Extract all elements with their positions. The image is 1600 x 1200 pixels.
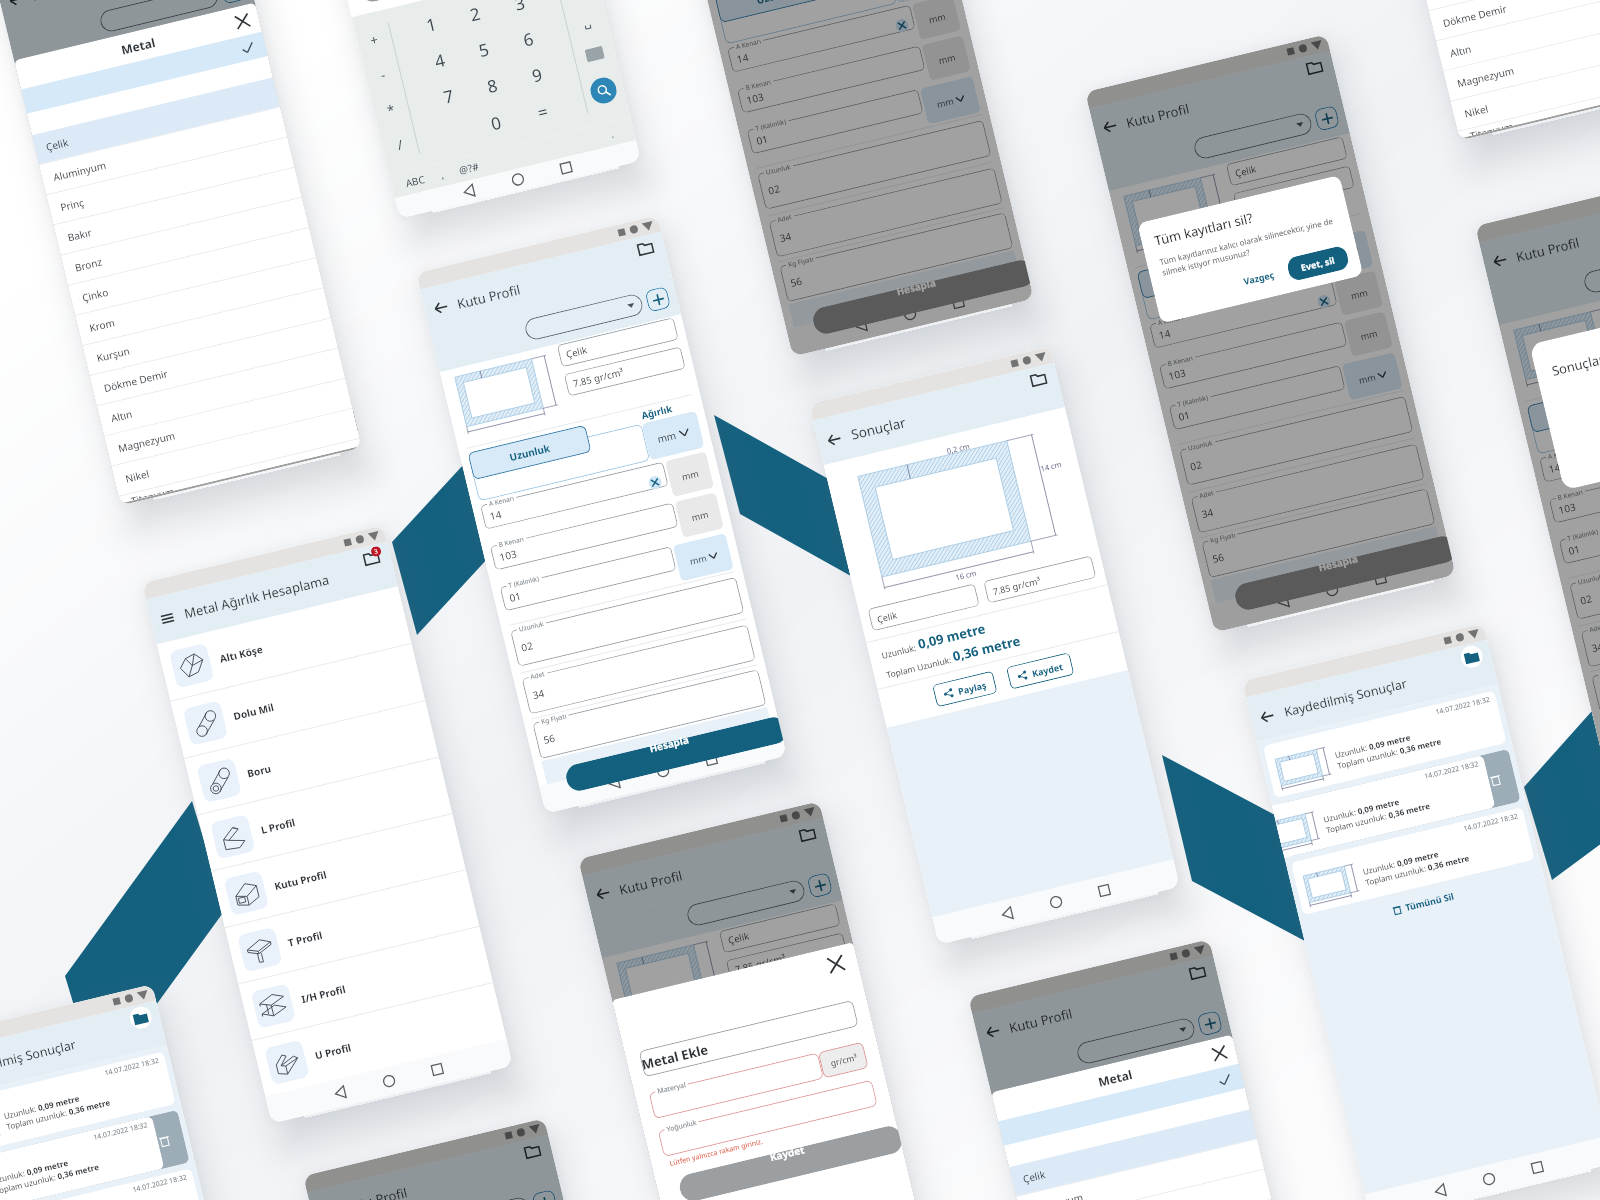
button[interactable]: mm <box>1193 1134 1257 1184</box>
button[interactable]: Delete record <box>1277 749 1521 857</box>
button[interactable]: Search <box>588 75 619 106</box>
button[interactable]: Kutu Profil <box>211 814 466 927</box>
button[interactable]: Prinç <box>1023 1170 1271 1200</box>
button[interactable] <box>717 0 897 44</box>
button[interactable]: Ağırlık <box>1309 221 1343 241</box>
button[interactable]: Kaydedilmiş Sonuçlar <box>0 1001 167 1103</box>
button[interactable]: Çelik <box>1009 1109 1257 1196</box>
button[interactable]: U Profil <box>252 983 506 1096</box>
button[interactable]: Tümünü Sil <box>1305 865 1541 940</box>
button[interactable]: Saved records <box>1458 643 1485 670</box>
button[interactable]: Uzunluk <box>42 117 167 172</box>
button[interactable]: mm <box>888 0 952 3</box>
button[interactable]: Add metal <box>220 0 246 4</box>
button[interactable]: Kutu Profil <box>1098 53 1332 150</box>
button[interactable]: Altın <box>1436 0 1600 71</box>
button[interactable] <box>523 292 645 342</box>
button[interactable]: Paylaş <box>932 671 998 707</box>
button[interactable]: Saved records <box>362 550 381 566</box>
button[interactable]: Nikel <box>1450 44 1600 131</box>
button[interactable]: Bakır <box>54 168 302 255</box>
button[interactable]: Delete record <box>0 1110 190 1200</box>
button[interactable]: mm <box>216 102 280 152</box>
button[interactable]: 14.07.2022 18:32 <box>0 1168 204 1200</box>
button[interactable]: Evet, sil <box>1285 245 1350 282</box>
button[interactable]: Uzunluk <box>629 1011 754 1066</box>
button[interactable]: mm <box>827 1037 876 1083</box>
button[interactable]: mm <box>240 143 289 189</box>
button[interactable]: Uzunluk <box>1136 244 1261 299</box>
button[interactable] <box>470 423 650 501</box>
button[interactable]: Add metal <box>645 286 671 312</box>
button[interactable] <box>45 115 225 193</box>
button[interactable]: Kutu Profil <box>4 0 238 23</box>
button[interactable]: Kutu Profil <box>591 820 825 917</box>
button[interactable]: Boru <box>184 701 439 814</box>
button[interactable]: mm <box>837 1078 886 1124</box>
button[interactable]: mm <box>912 0 961 40</box>
button[interactable]: mm <box>803 996 867 1046</box>
button[interactable] <box>1529 376 1600 454</box>
button[interactable]: Nikel <box>111 409 360 496</box>
button[interactable]: Saved records <box>1029 371 1048 387</box>
button[interactable] <box>1582 245 1600 295</box>
button[interactable] <box>1075 1016 1197 1066</box>
button[interactable]: Bronz <box>61 198 309 285</box>
button[interactable] <box>138 408 359 485</box>
button[interactable]: Saved records <box>523 1143 542 1159</box>
button[interactable]: 14.07.2022 18:32 <box>0 1116 164 1200</box>
button[interactable]: mm <box>673 533 734 582</box>
button[interactable]: Close <box>827 955 845 973</box>
button[interactable]: Ağırlık <box>802 988 836 1008</box>
button[interactable]: mm <box>835 1119 896 1168</box>
button[interactable]: Titanyum <box>119 439 361 504</box>
button[interactable]: Titanyum <box>1458 74 1600 139</box>
button[interactable]: mm <box>1342 352 1403 401</box>
button[interactable]: Kutu Profil <box>981 958 1215 1055</box>
button[interactable]: Saved records <box>1305 59 1324 75</box>
button[interactable]: Kaydet <box>1006 652 1074 690</box>
button[interactable]: Sonuçlar <box>813 363 1065 465</box>
button[interactable] <box>685 878 807 928</box>
button[interactable]: Kaydedilmiş Sonuçlar <box>1246 640 1498 742</box>
button[interactable] <box>1022 1147 1202 1200</box>
button[interactable]: mm <box>675 492 724 538</box>
button[interactable]: Kutu Profil <box>429 234 663 331</box>
button[interactable]: Add metal <box>1314 105 1340 131</box>
button[interactable] <box>677 1124 903 1200</box>
button[interactable]: Close <box>235 13 250 29</box>
button[interactable]: Ağırlık <box>640 402 674 422</box>
button[interactable]: Uzunluk <box>1526 378 1600 433</box>
button[interactable]: Clear <box>1316 294 1332 309</box>
button[interactable]: 14.07.2022 18:32 <box>1272 755 1495 858</box>
button[interactable]: Altı Köşe <box>157 586 411 701</box>
button[interactable]: Kutu Profil <box>1488 187 1600 284</box>
button[interactable] <box>1139 242 1319 320</box>
button[interactable]: Vazgeç <box>1236 264 1283 291</box>
button[interactable]: Clear <box>809 1061 825 1076</box>
button[interactable] <box>98 0 220 34</box>
button[interactable]: Aluminyum <box>1016 1139 1264 1200</box>
button[interactable]: mm <box>1344 311 1393 357</box>
button[interactable]: Clear <box>647 475 663 490</box>
button[interactable]: mm <box>920 76 981 125</box>
button[interactable]: 14.07.2022 18:32 <box>0 1051 176 1159</box>
button[interactable] <box>810 259 1031 336</box>
button[interactable]: mm <box>248 225 309 274</box>
button[interactable]: Kurşun <box>1421 0 1600 10</box>
button[interactable]: Add metal <box>807 872 833 898</box>
button[interactable]: L Profil <box>198 757 452 871</box>
button[interactable]: Prinç <box>46 138 294 225</box>
button[interactable]: Close <box>1212 1045 1227 1061</box>
button[interactable]: Saved records <box>636 240 655 256</box>
button[interactable]: Dökme Demir <box>90 318 338 405</box>
button[interactable]: Krom <box>75 258 323 345</box>
button[interactable]: mm <box>665 451 714 497</box>
button[interactable]: mm <box>1334 270 1383 316</box>
button[interactable]: Uzunluk <box>1019 1149 1144 1200</box>
button[interactable]: Uzunluk <box>467 425 592 480</box>
button[interactable]: Magnezyum <box>1443 14 1600 101</box>
button[interactable]: 14.07.2022 18:32 <box>1263 690 1507 798</box>
